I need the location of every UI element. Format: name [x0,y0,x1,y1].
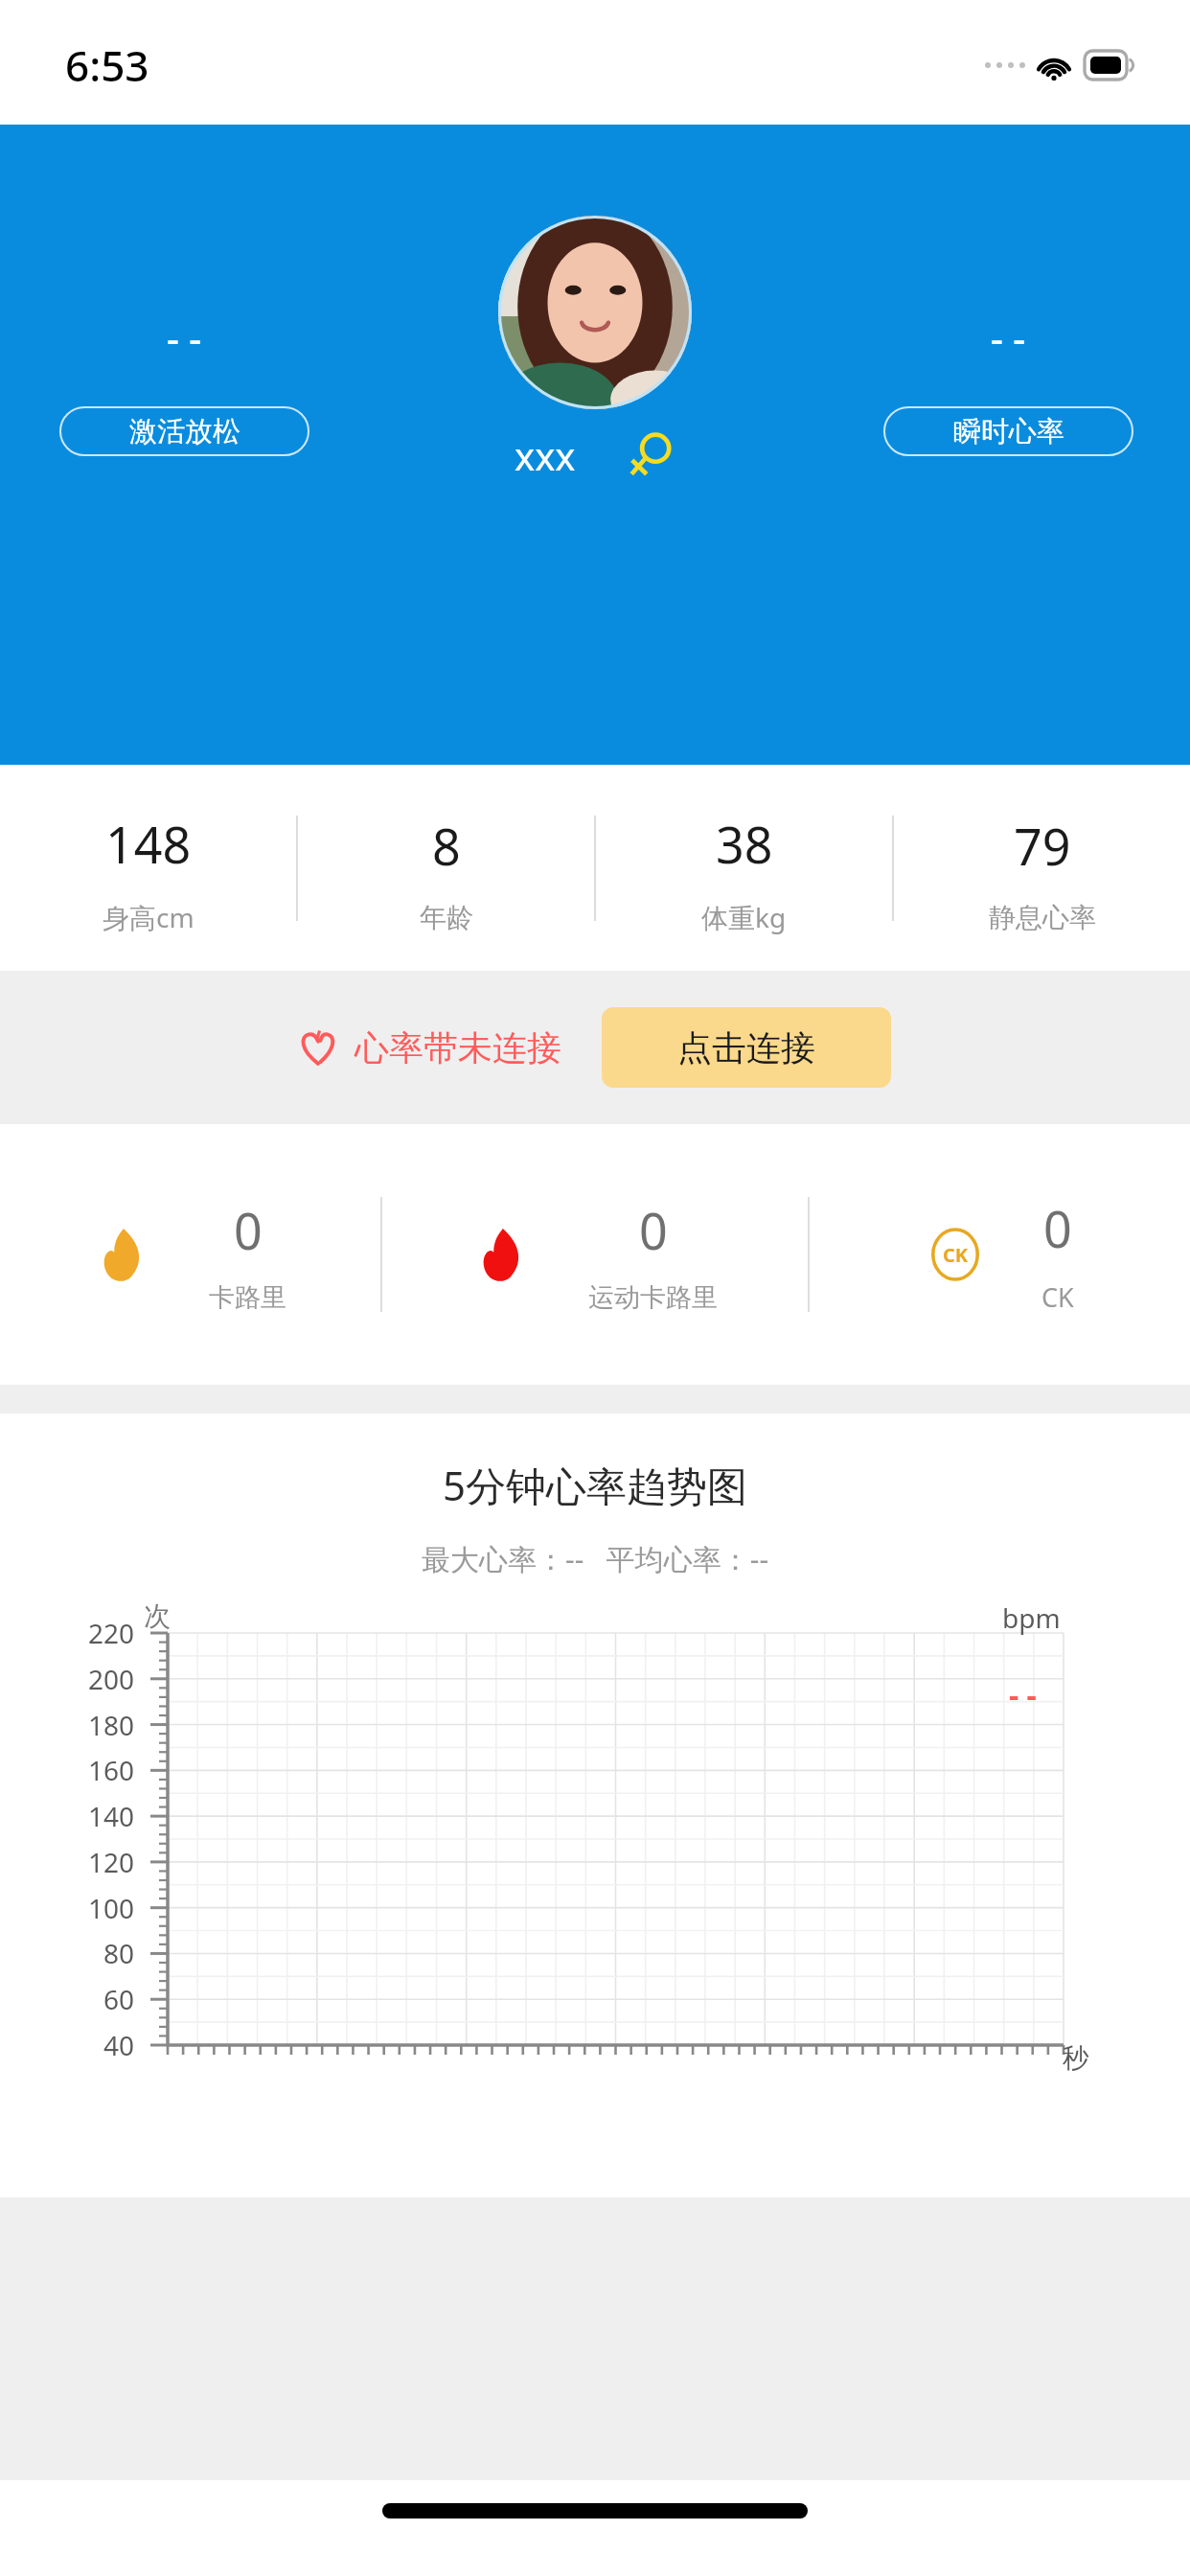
staticText: 79 [1014,812,1071,880]
staticText: 80 [103,1935,134,1971]
staticText: 心率带未连接 [355,1026,561,1069]
staticText: 148 [105,810,192,878]
staticText: 38 [716,810,773,878]
staticText: 运动卡路里 [588,1281,718,1314]
button[interactable]: 38 [596,765,892,971]
staticText: 最大心率：-- 平均心率：-- [422,1539,769,1578]
staticText: 140 [87,1798,134,1834]
staticText: 200 [87,1661,134,1697]
staticText: 60 [103,1981,134,2017]
staticText: 体重kg [701,899,787,935]
staticText: 0 [234,1196,263,1264]
staticText: 年龄 [420,901,473,934]
other: Gender female [626,430,675,480]
staticText: 40 [103,2027,134,2063]
staticText: CK [943,1242,969,1268]
staticText: CK [1041,1279,1074,1315]
staticText: 5分钟心率趋势图 [443,1458,748,1512]
button[interactable]: Profile photo [498,216,692,409]
staticText: 100 [87,1890,134,1926]
staticText: 点击连接 [677,1026,815,1069]
staticText: 0 [1043,1194,1072,1262]
staticText: 瞬时心率 [953,414,1064,449]
staticText: - - [991,311,1026,363]
staticText: 激活放松 [129,414,240,449]
staticText: xxx [515,429,576,481]
staticText: 次 [144,1599,171,1633]
button[interactable]: 瞬时心率 [883,406,1133,456]
staticText: 160 [87,1752,134,1788]
staticText: 身高cm [103,899,195,935]
button[interactable]: 0 [382,1124,808,1385]
staticText: 180 [87,1707,134,1743]
button[interactable]: 79 [894,765,1190,971]
staticText: - - [1009,1674,1037,1716]
button[interactable]: 点击连接 [602,1007,891,1088]
button[interactable]: 0 [0,1124,380,1385]
staticText: bpm [1002,1599,1061,1636]
staticText: 0 [639,1196,668,1264]
staticText: 120 [87,1844,134,1880]
staticText: 秒 [1063,2041,1089,2075]
staticText: 静息心率 [989,901,1096,934]
button[interactable]: CK [810,1124,1190,1385]
button[interactable]: 148 [0,765,296,971]
staticText: - - [167,311,202,363]
staticText: 220 [87,1615,134,1651]
staticText: 8 [432,812,461,880]
button[interactable]: 激活放松 [59,406,309,456]
staticText: 卡路里 [209,1281,286,1314]
button[interactable]: 8 [298,765,594,971]
staticText: 6:53 [65,36,149,94]
